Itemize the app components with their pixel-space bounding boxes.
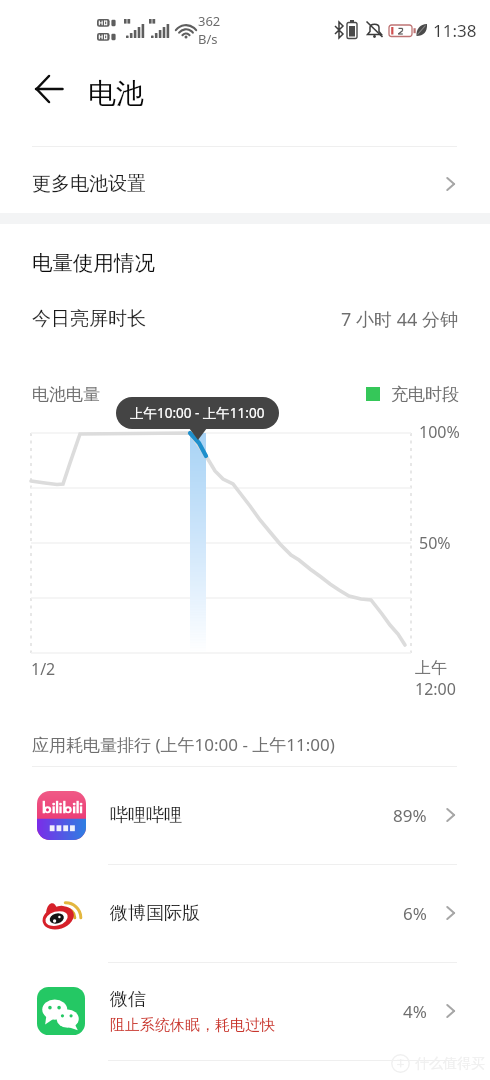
staticText: 电池	[88, 76, 144, 111]
staticText: 100%	[419, 421, 460, 443]
staticText: 362	[198, 12, 221, 30]
button[interactable]: 返回	[24, 62, 80, 118]
staticText: 更多电池设置	[32, 172, 146, 196]
button[interactable]: 微信	[0, 962, 490, 1060]
button[interactable]: 微博国际版	[0, 864, 490, 962]
staticText: 上午	[415, 658, 447, 678]
staticText: 89%	[393, 804, 427, 827]
button[interactable]: 更多电池设置	[0, 151, 490, 217]
staticText: 微博国际版	[110, 902, 200, 925]
staticText: 电池电量	[32, 384, 100, 405]
button[interactable]: 哔哩哔哩	[0, 766, 490, 864]
staticText: 上午10:00 - 上午11:00	[130, 404, 265, 422]
staticText: 应用耗电量排行 (上午10:00 - 上午11:00)	[32, 733, 335, 756]
staticText: 11:38	[433, 19, 477, 42]
staticText: 12:00	[415, 678, 456, 700]
staticText: 4%	[403, 1000, 427, 1023]
staticText: 7 小时 44 分钟	[341, 307, 458, 332]
staticText: B/s	[198, 30, 218, 48]
staticText: 今日亮屏时长	[32, 307, 146, 331]
staticText: 6%	[403, 902, 427, 925]
staticText: 1/2	[31, 658, 56, 680]
staticText: 哔哩哔哩	[110, 804, 182, 827]
staticText: 50%	[419, 532, 451, 554]
staticText: 电量使用情况	[32, 250, 155, 276]
button[interactable]: 今日亮屏时长	[0, 294, 490, 344]
staticText: 什么值得买	[415, 1055, 485, 1073]
staticText: 充电时段	[391, 384, 459, 405]
staticText: 微信	[110, 988, 146, 1011]
staticText: 阻止系统休眠，耗电过快	[110, 1016, 275, 1035]
